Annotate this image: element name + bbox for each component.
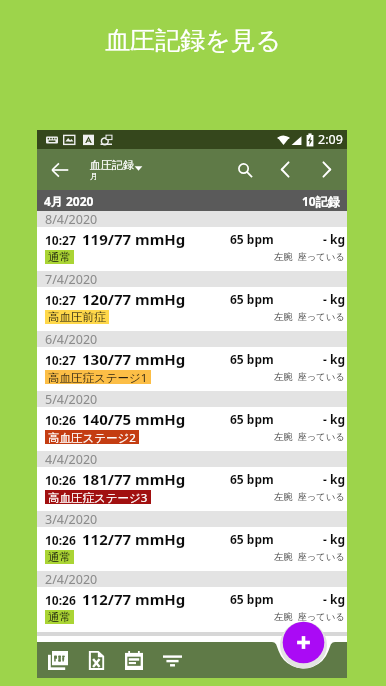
staticText: 181/77 mmHg: [82, 469, 186, 489]
staticText: 左腕 座っている: [274, 490, 345, 503]
staticText: 左腕 座っている: [274, 610, 345, 623]
staticText: 高血圧症ステージ3: [48, 490, 148, 504]
button[interactable]: Add record: [277, 616, 330, 669]
staticText: 112/77 mmHg: [82, 529, 186, 549]
button[interactable]: Calendar view: [115, 642, 153, 678]
staticText: 月: [90, 171, 98, 181]
staticText: - kg: [323, 411, 345, 427]
staticText: 10:26: [45, 532, 76, 548]
staticText: 2/4/2020: [45, 571, 98, 587]
staticText: 65 bpm: [230, 591, 274, 607]
staticText: - kg: [323, 531, 345, 547]
staticText: 左腕 座っている: [274, 250, 345, 263]
button[interactable]: 4/4/2020: [37, 451, 347, 511]
staticText: 通常: [48, 550, 71, 564]
staticText: 4月 2020: [44, 193, 94, 209]
staticText: 7/4/2020: [45, 271, 98, 287]
staticText: 10:26: [45, 472, 76, 488]
staticText: 65 bpm: [230, 411, 274, 427]
button[interactable]: Search: [225, 149, 265, 190]
staticText: 血圧記録: [90, 158, 134, 172]
staticText: - kg: [323, 291, 345, 307]
button[interactable]: Back: [37, 149, 83, 190]
staticText: 10:26: [45, 592, 76, 608]
staticText: 3/4/2020: [45, 511, 98, 527]
button[interactable]: 5/4/2020: [37, 391, 347, 451]
button[interactable]: Export PDF: [39, 642, 77, 678]
staticText: 左腕 座っている: [274, 550, 345, 563]
button[interactable]: Previous month: [265, 149, 305, 190]
staticText: 10記録: [302, 193, 340, 209]
staticText: 2:09: [318, 131, 343, 148]
button[interactable]: 7/4/2020: [37, 271, 347, 331]
staticText: 10:27: [45, 352, 76, 368]
staticText: 左腕 座っている: [274, 310, 345, 323]
button[interactable]: Next month: [305, 149, 347, 190]
staticText: 65 bpm: [230, 531, 274, 547]
staticText: 130/77 mmHg: [82, 349, 186, 369]
button[interactable]: Filter: [153, 642, 191, 678]
staticText: - kg: [323, 591, 345, 607]
staticText: 通常: [48, 250, 71, 264]
staticText: 4/4/2020: [45, 451, 98, 467]
staticText: 5/4/2020: [45, 391, 98, 407]
staticText: 65 bpm: [230, 471, 274, 487]
staticText: - kg: [323, 471, 345, 487]
staticText: 10:26: [45, 412, 76, 428]
staticText: 112/77 mmHg: [82, 589, 186, 609]
staticText: 左腕 座っている: [274, 430, 345, 443]
staticText: 10:27: [45, 292, 76, 308]
staticText: 8/4/2020: [45, 211, 98, 227]
staticText: 高血圧ステージ2: [48, 430, 136, 444]
staticText: 通常: [48, 610, 71, 624]
staticText: 120/77 mmHg: [82, 289, 186, 309]
button[interactable]: 6/4/2020: [37, 331, 347, 391]
staticText: 140/75 mmHg: [82, 409, 186, 429]
button[interactable]: 8/4/2020: [37, 211, 347, 271]
button[interactable]: Export spreadsheet: [77, 642, 115, 678]
staticText: 65 bpm: [230, 291, 274, 307]
staticText: 65 bpm: [230, 351, 274, 367]
button[interactable]: 3/4/2020: [37, 511, 347, 571]
staticText: 左腕 座っている: [274, 370, 345, 383]
staticText: - kg: [323, 231, 345, 247]
staticText: 119/77 mmHg: [82, 229, 186, 249]
staticText: 6/4/2020: [45, 331, 98, 347]
staticText: - kg: [323, 351, 345, 367]
staticText: 10:27: [45, 232, 76, 248]
staticText: 血圧記録を見る: [105, 25, 282, 56]
button[interactable]: 2/4/2020: [37, 571, 347, 631]
staticText: 65 bpm: [230, 231, 274, 247]
staticText: 高血圧前症: [48, 310, 106, 324]
staticText: 高血圧症ステージ1: [48, 370, 148, 384]
